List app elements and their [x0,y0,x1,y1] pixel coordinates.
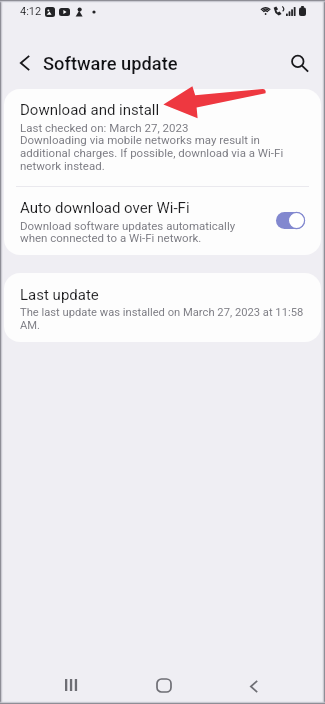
button[interactable]: Search [277,41,321,85]
staticText: Last checked on: March 27, 2023 Download… [20,121,305,173]
button[interactable]: Back [231,668,276,704]
button[interactable]: Auto download over Wi-Fi [4,187,321,255]
staticText: Last update [20,286,99,304]
button[interactable]: Download and install [4,89,321,186]
button[interactable]: Navigate up [3,41,47,85]
staticText: Download software updates automatically … [20,219,260,245]
staticText: Auto download over Wi-Fi [20,199,190,217]
staticText: The last update was installed on March 2… [20,306,305,332]
button[interactable]: Auto download over Wi-Fi toggle [276,212,305,229]
staticText: Software update [43,53,178,74]
button[interactable]: Home [141,667,186,703]
staticText: Download and install [20,101,160,119]
button[interactable]: Last update [4,273,321,342]
button[interactable]: Recent apps [49,667,94,703]
staticText: 4:12 [20,5,42,18]
